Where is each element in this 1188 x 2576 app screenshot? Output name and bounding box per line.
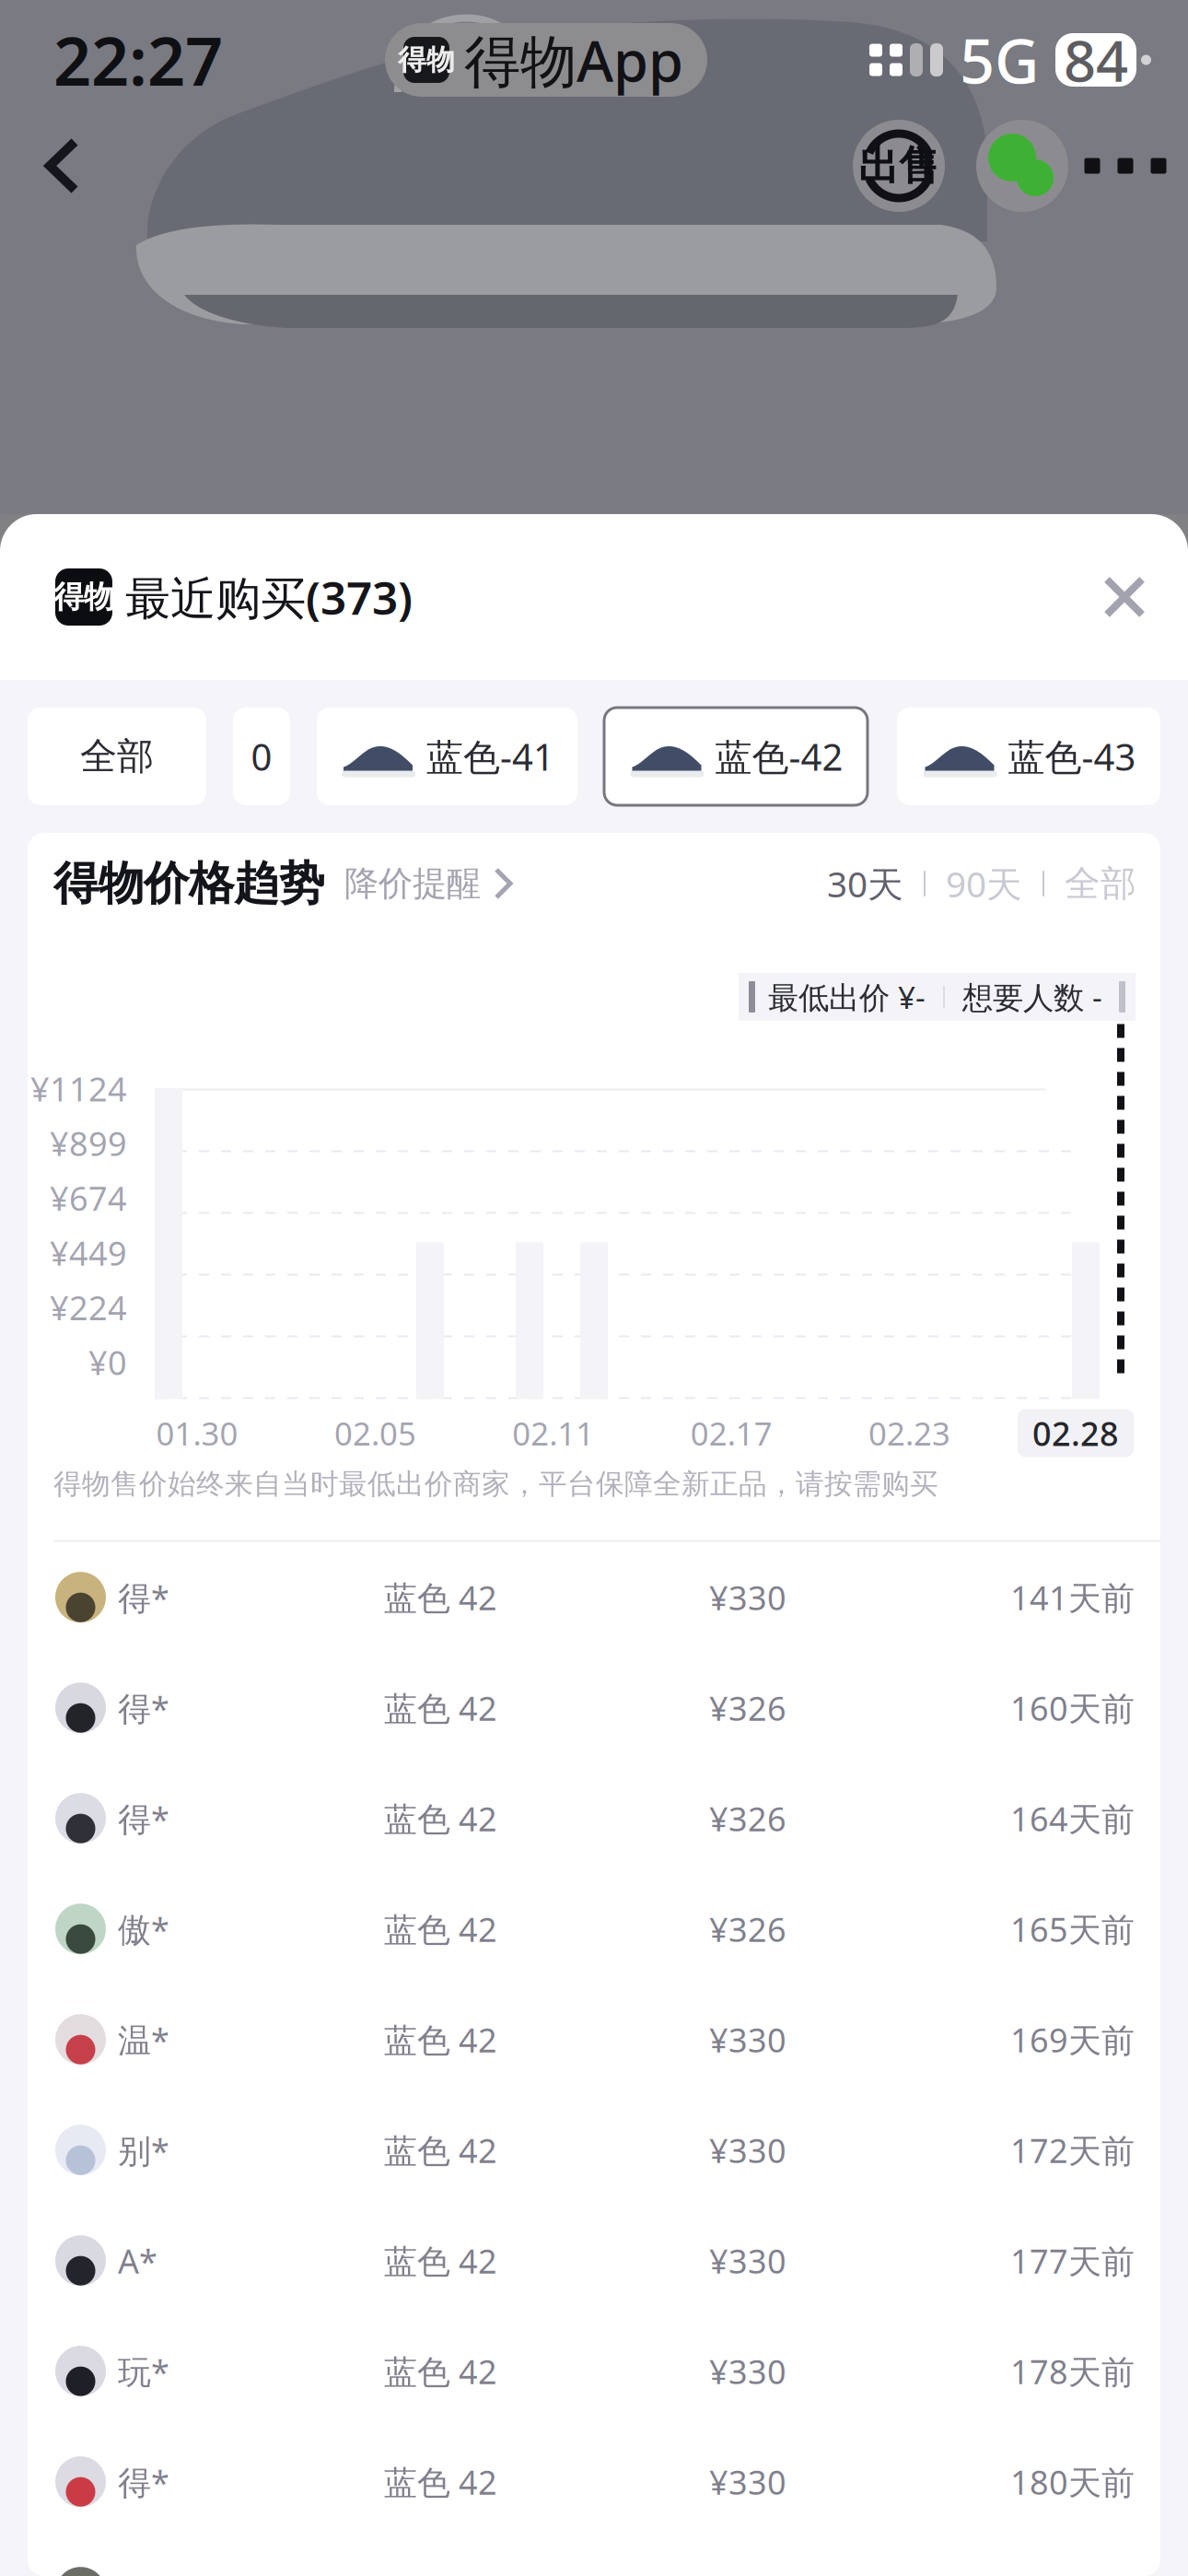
button[interactable]: 渡* xyxy=(28,2537,1160,2576)
staticText: 22:27 xyxy=(53,16,223,104)
staticText: 蓝色 42 xyxy=(384,2128,497,2172)
staticText: 得物价格趋势 xyxy=(53,856,324,911)
staticText: 90天 xyxy=(946,860,1022,907)
staticText: 得* xyxy=(118,2460,169,2504)
button[interactable]: 得* xyxy=(28,1763,1160,1874)
staticText: 169天前 xyxy=(1010,2017,1135,2062)
button[interactable]: 全部 xyxy=(28,708,206,805)
staticText: 傲* xyxy=(118,1907,169,1951)
staticText: ¥330 xyxy=(709,2017,786,2062)
button[interactable]: 降价提醒 xyxy=(324,862,514,905)
staticText: ¥326 xyxy=(709,1907,786,1951)
button[interactable]: 30天 xyxy=(827,860,903,907)
button[interactable]: Share to WeChat xyxy=(976,120,1068,212)
staticText: ¥326 xyxy=(709,1686,786,1730)
button[interactable]: 0 xyxy=(233,708,290,805)
staticText: ¥1124 xyxy=(30,1067,127,1111)
staticText: 蓝色 42 xyxy=(384,2460,497,2504)
staticText: 别* xyxy=(118,2128,169,2172)
staticText: 蓝色 42 xyxy=(384,1907,497,1951)
button[interactable]: Sell xyxy=(853,120,945,212)
button[interactable]: More xyxy=(1068,120,1182,212)
staticText: ¥899 xyxy=(50,1121,127,1165)
staticText: 温* xyxy=(118,2017,169,2062)
button[interactable]: 蓝色-42 xyxy=(604,708,868,805)
button[interactable]: 得* xyxy=(28,2426,1160,2537)
staticText: 84 xyxy=(1064,22,1128,97)
button[interactable]: 蓝色-41 xyxy=(317,708,577,805)
staticText: 02.05 xyxy=(334,1412,416,1454)
staticText: 02.17 xyxy=(690,1412,772,1454)
button[interactable]: Close xyxy=(1084,556,1165,638)
button[interactable]: 90天 xyxy=(946,860,1022,907)
staticText: 蓝色 42 xyxy=(384,1575,497,1619)
button[interactable]: Back xyxy=(28,120,98,212)
staticText: ¥330 xyxy=(709,2460,786,2504)
staticText: 蓝色 42 xyxy=(384,1686,497,1730)
staticText: 得* xyxy=(118,1575,169,1619)
staticText: ¥674 xyxy=(50,1176,127,1220)
staticText: 得物 xyxy=(53,578,114,616)
staticText: 得* xyxy=(118,1796,169,1840)
staticText: 165天前 xyxy=(1010,1907,1135,1951)
staticText: 141天前 xyxy=(1010,1575,1135,1619)
staticText: A* xyxy=(118,2239,157,2283)
staticText: 蓝色-41 xyxy=(426,732,554,781)
staticText: 蓝色-42 xyxy=(715,732,843,781)
staticText: 0 xyxy=(251,732,272,781)
button[interactable]: 玩* xyxy=(28,2316,1160,2426)
staticText: ¥330 xyxy=(709,1575,786,1619)
staticText: 蓝色 42 xyxy=(384,2239,497,2283)
staticText: 5G xyxy=(960,19,1039,101)
staticText: 180天前 xyxy=(1010,2460,1135,2504)
staticText: 02.11 xyxy=(512,1412,594,1454)
staticText: ¥449 xyxy=(50,1231,127,1275)
staticText: 蓝色-43 xyxy=(1008,732,1136,781)
staticText: 172天前 xyxy=(1010,2128,1135,2172)
staticText: 蓝色 42 xyxy=(384,1796,497,1840)
staticText: ¥330 xyxy=(709,2239,786,2283)
staticText: 得物App xyxy=(464,22,683,97)
staticText: 蓝色 42 xyxy=(384,2017,497,2062)
staticText: 177天前 xyxy=(1010,2239,1135,2283)
staticText: 164天前 xyxy=(1010,1796,1135,1840)
staticText: 玩* xyxy=(118,2349,169,2393)
staticText: 得物售价始终来自当时最低出价商家，平台保障全新正品，请按需购买 xyxy=(53,1467,938,1501)
staticText: 全部 xyxy=(80,734,154,779)
staticText: 得物 xyxy=(398,43,455,77)
button[interactable]: 得* xyxy=(28,1542,1160,1653)
staticText: 178天前 xyxy=(1010,2349,1135,2393)
button[interactable]: 傲* xyxy=(28,1874,1160,1984)
staticText: 02.28 xyxy=(1032,1411,1119,1455)
staticText: 160天前 xyxy=(1010,1686,1135,1730)
button[interactable]: 温* xyxy=(28,1984,1160,2095)
staticText: 得* xyxy=(118,1686,169,1730)
staticText: 02.23 xyxy=(869,1412,950,1454)
button[interactable]: 别* xyxy=(28,2095,1160,2205)
staticText: 01.30 xyxy=(156,1412,238,1454)
button[interactable]: 蓝色-43 xyxy=(897,708,1160,805)
staticText: 降价提醒 xyxy=(344,862,481,905)
staticText: ¥330 xyxy=(709,2128,786,2172)
staticText: 蓝色 42 xyxy=(384,2349,497,2393)
staticText: ¥326 xyxy=(709,1796,786,1840)
button[interactable]: 全部 xyxy=(1065,862,1136,905)
staticText: 最低出价 ¥- xyxy=(768,977,926,1017)
staticText: 全部 xyxy=(1065,862,1136,905)
staticText: ¥330 xyxy=(709,2349,786,2393)
staticText: 30天 xyxy=(827,860,903,907)
staticText: ¥224 xyxy=(50,1285,127,1329)
staticText: 想要人数 - xyxy=(962,977,1102,1017)
staticText: 最近购买(373) xyxy=(125,567,413,627)
button[interactable]: A* xyxy=(28,2205,1160,2316)
staticText: ¥0 xyxy=(88,1340,127,1384)
button[interactable]: 得* xyxy=(28,1653,1160,1763)
staticText: 出售 xyxy=(858,141,939,191)
